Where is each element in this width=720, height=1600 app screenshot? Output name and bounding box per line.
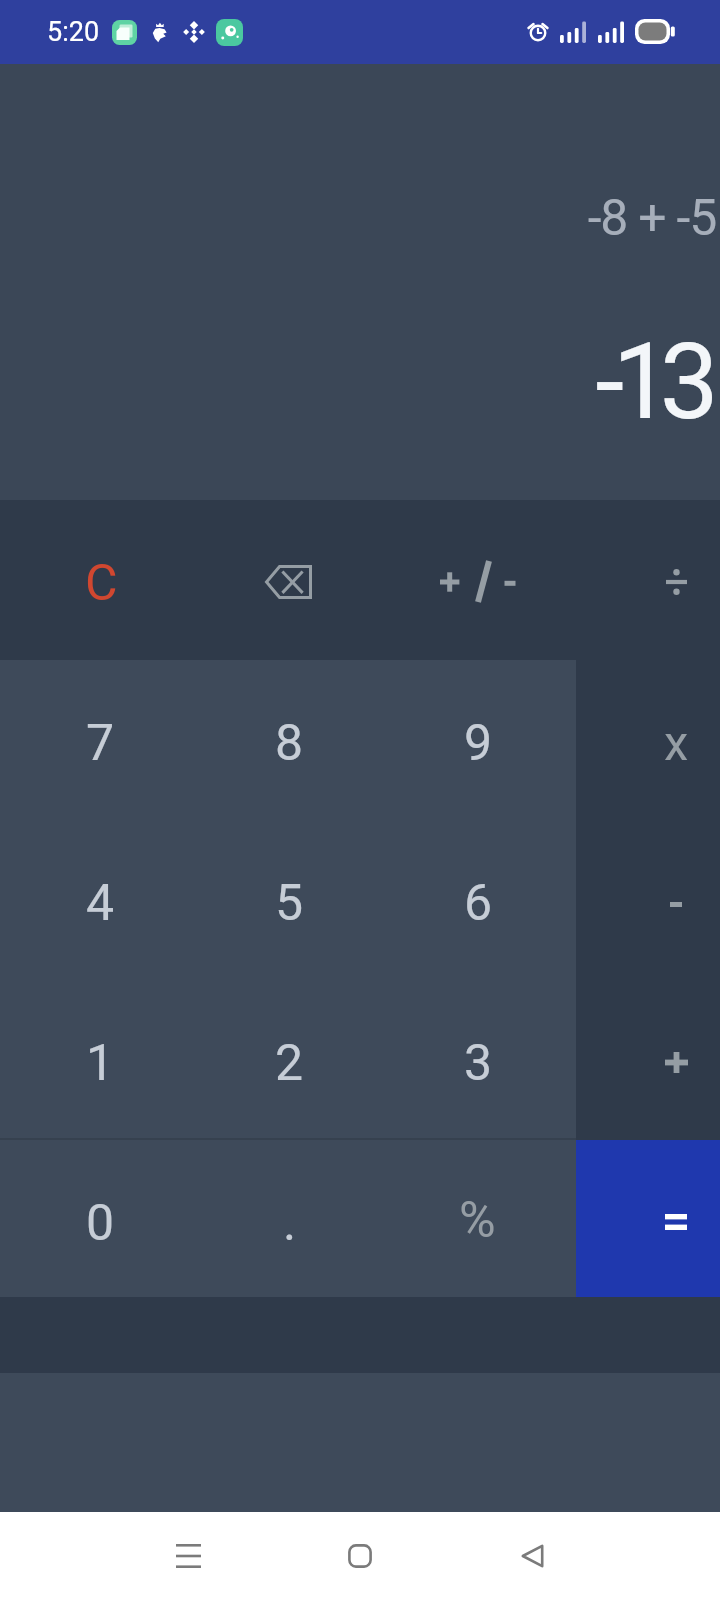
- staticText: 7: [86, 714, 115, 773]
- staticText: %: [459, 1191, 496, 1250]
- button[interactable]: Clear: [0, 500, 192, 660]
- button[interactable]: 4: [4, 820, 193, 980]
- staticText: 4: [86, 874, 115, 933]
- button[interactable]: 8: [193, 660, 382, 820]
- button[interactable]: Minus: [576, 820, 720, 980]
- button[interactable]: 2: [193, 980, 382, 1140]
- staticText: -13: [595, 321, 707, 444]
- button[interactable]: 1: [4, 980, 193, 1140]
- staticText: 1: [86, 1034, 115, 1093]
- button[interactable]: .: [193, 1140, 382, 1300]
- button[interactable]: Back: [436, 1512, 628, 1600]
- staticText: 5: [275, 874, 304, 933]
- button[interactable]: 0: [4, 1140, 193, 1300]
- staticText: C: [85, 554, 118, 613]
- button[interactable]: Equals: [576, 1140, 720, 1297]
- button[interactable]: 7: [4, 660, 193, 820]
- button[interactable]: Multiply: [576, 660, 720, 820]
- staticText: 2: [275, 1034, 304, 1093]
- button[interactable]: Divide: [576, 500, 720, 660]
- button[interactable]: Toggle sign: [384, 500, 576, 660]
- button[interactable]: Home: [264, 1512, 456, 1600]
- staticText: 9: [464, 714, 493, 773]
- staticText: 3: [464, 1034, 493, 1093]
- button[interactable]: Recent apps: [92, 1512, 284, 1600]
- staticText: 8: [275, 714, 304, 773]
- button[interactable]: 5: [193, 820, 382, 980]
- button[interactable]: Plus: [576, 980, 720, 1140]
- staticText: 6: [464, 874, 493, 933]
- staticText: -8 + -5: [587, 189, 716, 248]
- button[interactable]: 3: [382, 980, 571, 1140]
- button[interactable]: Backspace: [192, 500, 384, 660]
- button[interactable]: 6: [382, 820, 571, 980]
- button[interactable]: 9: [382, 660, 571, 820]
- staticText: .: [283, 1194, 297, 1253]
- staticText: 5:20: [47, 16, 100, 48]
- button[interactable]: %: [382, 1140, 571, 1300]
- staticText: x: [664, 715, 689, 772]
- staticText: 0: [86, 1194, 115, 1253]
